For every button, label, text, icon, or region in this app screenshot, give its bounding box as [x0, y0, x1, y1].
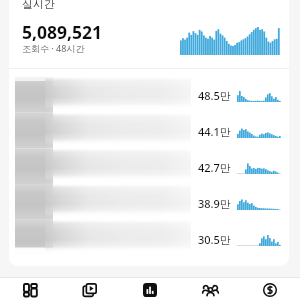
staticText: 실시간: [22, 0, 55, 11]
staticText: 38.9만: [198, 196, 231, 211]
staticText: 30.5만: [198, 232, 231, 247]
button[interactable]: 44.1만: [9, 113, 289, 149]
button[interactable]: 38.9만: [9, 185, 289, 221]
staticText: 44.1만: [198, 124, 231, 139]
staticText: 조회수 · 48시간: [22, 42, 85, 54]
staticText: 42.7만: [198, 160, 231, 175]
button[interactable]: 48.5만: [9, 77, 289, 113]
button[interactable]: Analytics: [120, 278, 180, 300]
button[interactable]: Dashboard: [0, 278, 60, 300]
button[interactable]: Content: [60, 278, 120, 300]
staticText: 5,089,521: [22, 20, 103, 44]
button[interactable]: Earn: [240, 278, 300, 300]
button[interactable]: 42.7만: [9, 149, 289, 185]
button[interactable]: 30.5만: [9, 221, 289, 257]
staticText: 48.5만: [198, 88, 231, 103]
button[interactable]: Audience: [180, 278, 240, 300]
